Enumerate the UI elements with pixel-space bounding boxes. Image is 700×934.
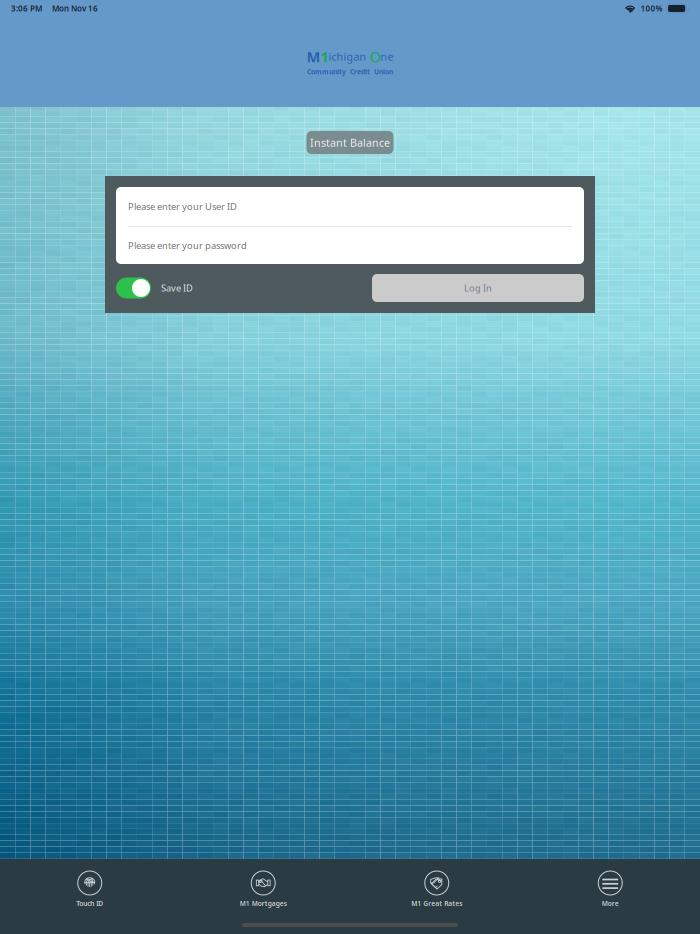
staticText: Community bbox=[307, 67, 346, 76]
staticText: M bbox=[306, 47, 320, 66]
button[interactable]: Log In bbox=[372, 274, 584, 302]
staticText: Union bbox=[374, 67, 393, 76]
staticText: Mon Nov 16 bbox=[52, 3, 98, 14]
staticText: Save ID bbox=[161, 282, 193, 294]
staticText: ichigan bbox=[328, 49, 369, 64]
staticText: M1 Great Rates bbox=[411, 899, 462, 908]
staticText: 3:06 PM bbox=[11, 3, 42, 14]
button[interactable]: M1 Great Rates bbox=[350, 867, 523, 912]
staticText: More bbox=[602, 899, 619, 908]
button[interactable]: Save ID bbox=[116, 277, 193, 298]
button[interactable]: More bbox=[523, 867, 697, 912]
staticText: O bbox=[369, 47, 380, 66]
staticText: Please enter your User ID bbox=[128, 200, 237, 213]
staticText: 1 bbox=[320, 47, 328, 66]
staticText: M1 Mortgages bbox=[240, 899, 287, 908]
button[interactable]: M1 Mortgages bbox=[176, 867, 350, 912]
staticText: 100% bbox=[641, 3, 663, 14]
staticText: ne bbox=[380, 49, 393, 64]
staticText: Please enter your password bbox=[128, 239, 247, 252]
button[interactable]: Instant Balance bbox=[306, 131, 393, 154]
staticText: Instant Balance bbox=[310, 135, 390, 150]
staticText: Touch ID bbox=[76, 899, 103, 908]
staticText: Log In bbox=[464, 282, 492, 294]
button[interactable]: Touch ID bbox=[3, 867, 176, 912]
staticText: Credit bbox=[350, 67, 370, 76]
